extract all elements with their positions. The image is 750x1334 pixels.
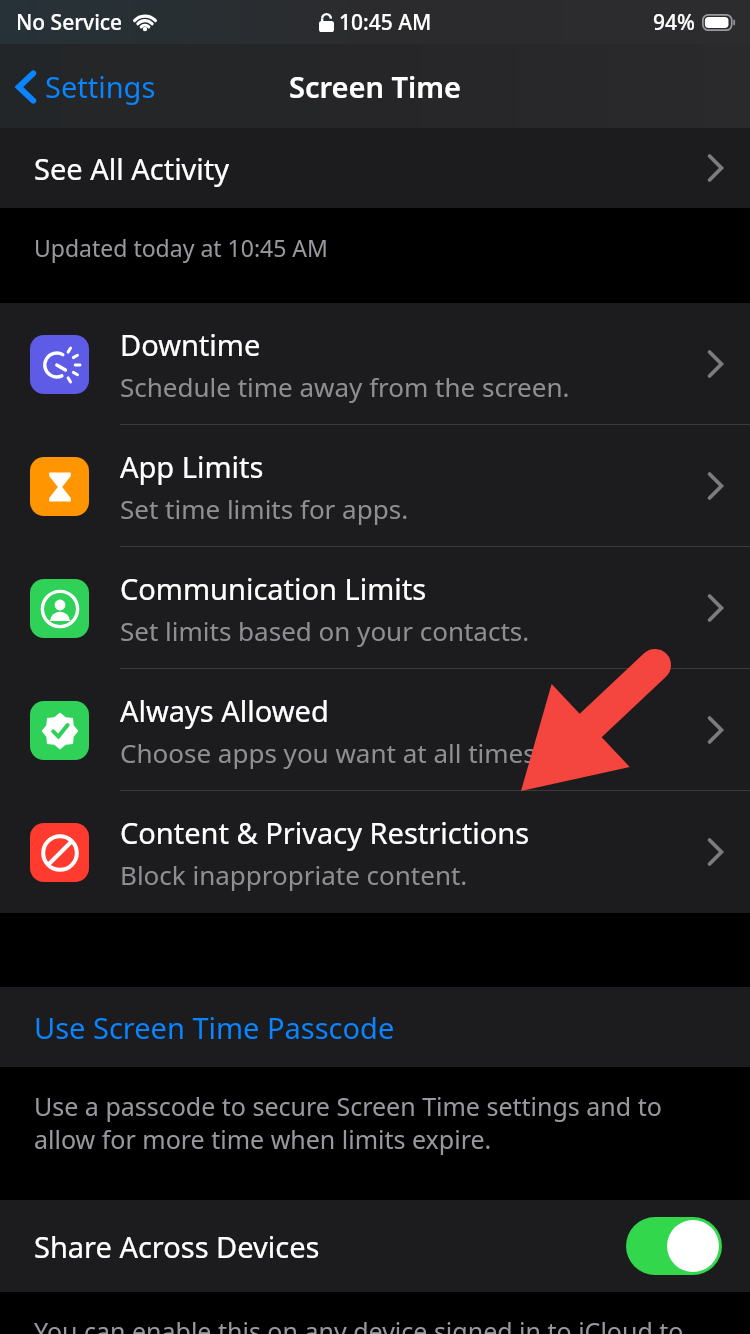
staticText: You can enable this on any device signed… — [34, 1314, 684, 1334]
staticText: Choose apps you want at all times. — [120, 735, 543, 770]
button[interactable]: App Limits — [0, 425, 750, 547]
staticText: Updated today at 10:45 AM — [34, 232, 328, 263]
staticText: Block inappropriate content. — [120, 857, 468, 892]
button[interactable]: Use Screen Time Passcode — [0, 987, 750, 1067]
staticText: See All Activity — [34, 149, 230, 188]
staticText: No Service — [16, 8, 123, 37]
button[interactable]: Settings — [8, 61, 164, 112]
staticText: 94% — [653, 8, 695, 37]
staticText: Schedule time away from the screen. — [120, 369, 570, 404]
staticText: Screen Time — [289, 67, 461, 106]
staticText: Always Allowed — [120, 691, 329, 730]
staticText: Settings — [45, 67, 156, 106]
button[interactable]: Communication Limits — [0, 547, 750, 669]
staticText: Content & Privacy Restrictions — [120, 813, 530, 852]
button[interactable]: Downtime — [0, 303, 750, 425]
staticText: App Limits — [120, 447, 264, 486]
button[interactable]: Always Allowed — [0, 669, 750, 791]
staticText: Communication Limits — [120, 569, 427, 608]
button[interactable]: Share Across Devices — [0, 1200, 750, 1292]
button[interactable]: Content & Privacy Restrictions — [0, 791, 750, 913]
staticText: Downtime — [120, 325, 261, 364]
staticText: Use a passcode to secure Screen Time set… — [34, 1089, 698, 1156]
staticText: Set limits based on your contacts. — [120, 613, 530, 648]
button[interactable]: Share Across Devices toggle, on — [626, 1217, 722, 1275]
staticText: Share Across Devices — [34, 1227, 320, 1266]
button[interactable]: See All Activity — [0, 128, 750, 208]
staticText: 10:45 AM — [339, 8, 432, 37]
staticText: Use Screen Time Passcode — [34, 1008, 395, 1047]
staticText: Set time limits for apps. — [120, 491, 409, 526]
